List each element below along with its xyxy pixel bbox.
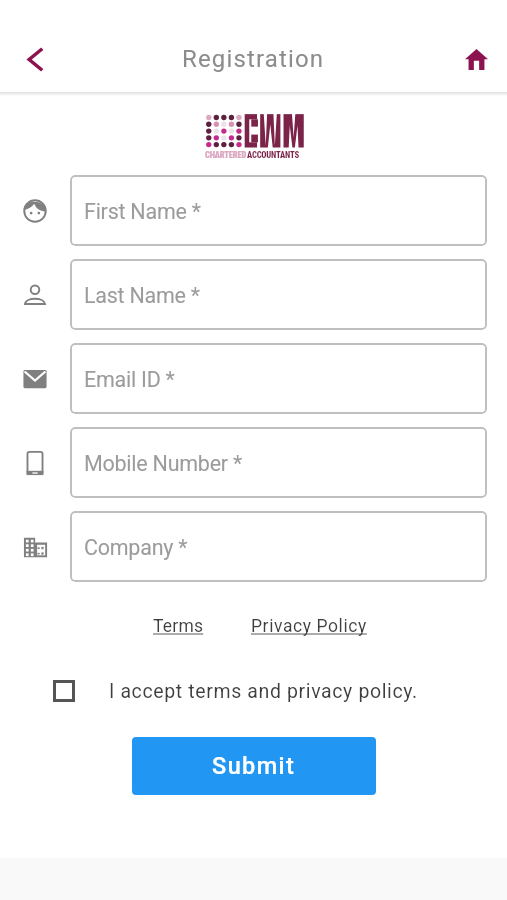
button[interactable]: Terms	[150, 613, 207, 639]
button[interactable]: I accept terms and privacy policy.	[0, 674, 507, 708]
staticText: Mobile Number *	[84, 451, 242, 476]
button[interactable]: Email ID *	[70, 343, 487, 414]
button[interactable]: Last Name *	[70, 259, 487, 330]
button[interactable]: Company *	[70, 511, 487, 582]
staticText: Company *	[84, 535, 188, 560]
staticText: I accept terms and privacy policy.	[109, 680, 418, 703]
button[interactable]: Privacy Policy	[248, 613, 370, 639]
button[interactable]: Submit	[132, 737, 376, 795]
staticText: Last Name *	[84, 283, 200, 308]
staticText: Privacy Policy	[251, 616, 367, 636]
button[interactable]: Mobile Number *	[70, 427, 487, 498]
staticText: Email ID *	[84, 367, 175, 392]
staticText: First Name *	[84, 199, 201, 224]
button[interactable]: Back	[11, 35, 59, 83]
staticText: CHARTERED	[205, 150, 247, 160]
staticText: ACCOUNTANTS	[247, 150, 300, 160]
button[interactable]: First Name *	[70, 175, 487, 246]
staticText: Terms	[153, 616, 204, 636]
staticText: Registration	[182, 45, 325, 73]
staticText: Submit	[212, 752, 296, 780]
button[interactable]: Home	[452, 35, 500, 83]
